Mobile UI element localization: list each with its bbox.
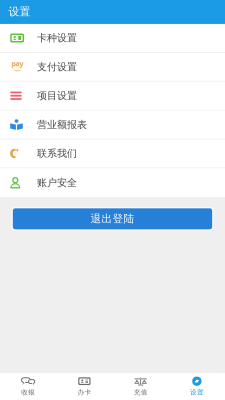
staticText: 设置 [190, 388, 204, 396]
staticText: 设置 [9, 5, 31, 18]
staticText: pay [11, 59, 23, 68]
button[interactable]: 充值 [112, 373, 169, 400]
staticText: 退出登陆 [90, 212, 134, 225]
staticText: 营业额报表 [37, 118, 87, 131]
button[interactable]: 营业额报表 [0, 111, 225, 139]
staticText: 账户安全 [37, 176, 77, 189]
button[interactable]: 收银 [0, 373, 56, 400]
button[interactable]: 联系我们 [0, 139, 225, 168]
staticText: 卡种设置 [37, 32, 77, 44]
button[interactable]: 账户安全 [0, 168, 225, 197]
staticText: 项目设置 [37, 89, 77, 102]
staticText: 支付设置 [37, 61, 77, 73]
button[interactable]: 设置 [169, 373, 225, 400]
staticText: 联系我们 [37, 147, 77, 160]
staticText: 办卡 [77, 388, 91, 396]
button[interactable]: 项目设置 [0, 82, 225, 111]
staticText: 充值 [134, 388, 148, 396]
button[interactable]: 办卡 [56, 373, 112, 400]
staticText: 收银 [21, 388, 35, 396]
button[interactable]: 退出登陆 [12, 207, 213, 230]
button[interactable]: pay [0, 53, 225, 82]
button[interactable]: 卡种设置 [0, 24, 225, 53]
